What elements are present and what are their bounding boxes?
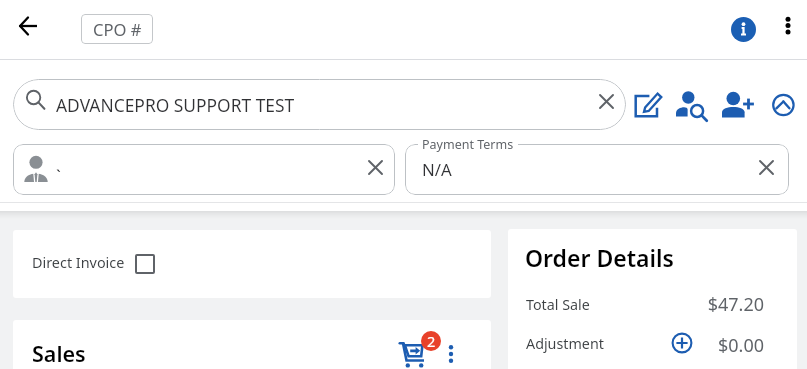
staticText: $0.00 bbox=[693, 333, 764, 358]
staticText: ` bbox=[56, 164, 61, 187]
button[interactable]: Information bbox=[723, 9, 763, 49]
staticText: Payment Terms bbox=[422, 136, 514, 153]
staticText: 2 bbox=[427, 331, 436, 351]
button[interactable]: Clear search bbox=[584, 79, 626, 124]
staticText: $47.20 bbox=[693, 292, 764, 317]
button[interactable]: CPO # bbox=[81, 14, 153, 44]
button[interactable]: Total Sale bbox=[508, 282, 797, 316]
button[interactable]: Adjustment bbox=[508, 323, 797, 357]
button[interactable]: Direct Invoice bbox=[13, 230, 491, 298]
button[interactable]: ADVANCEPRO SUPPORT TEST bbox=[13, 79, 626, 130]
button[interactable]: Clear payment terms bbox=[744, 145, 789, 190]
button[interactable]: Add adjustment bbox=[666, 327, 697, 358]
staticText: Direct Invoice bbox=[32, 253, 125, 273]
button[interactable]: Edit bbox=[631, 87, 667, 123]
staticText: Order Details bbox=[525, 242, 674, 273]
button[interactable]: N/A bbox=[405, 144, 789, 195]
button[interactable]: More options bbox=[769, 7, 807, 45]
staticText: ADVANCEPRO SUPPORT TEST bbox=[56, 93, 295, 117]
staticText: Sales bbox=[32, 339, 86, 368]
staticText: Total Sale bbox=[526, 295, 590, 314]
button[interactable]: Direct Invoice checkbox bbox=[135, 254, 155, 274]
button[interactable]: Sales menu bbox=[436, 339, 466, 369]
button[interactable]: ` bbox=[13, 144, 395, 195]
button[interactable]: Clear contact bbox=[353, 145, 395, 190]
button[interactable]: Back bbox=[9, 7, 46, 44]
staticText: Adjustment bbox=[526, 334, 604, 353]
staticText: N/A bbox=[422, 158, 452, 181]
button[interactable]: Cart bbox=[386, 330, 430, 369]
button[interactable]: Collapse bbox=[766, 87, 802, 123]
staticText: CPO # bbox=[93, 18, 142, 41]
button[interactable]: Add customer bbox=[719, 87, 755, 123]
button[interactable]: Search customer bbox=[673, 87, 709, 123]
